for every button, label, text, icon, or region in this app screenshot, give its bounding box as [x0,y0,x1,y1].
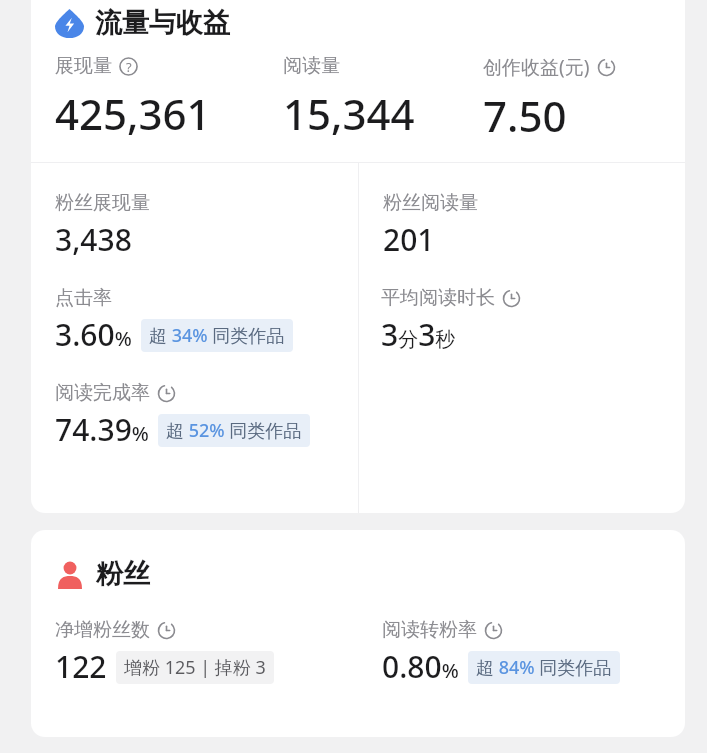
other: 粉丝 [55,559,85,589]
button[interactable]: 展现量 [31,54,259,142]
staticText: 点击率 [55,286,112,310]
staticText: 74.39% [55,409,149,450]
staticText: 7.50 [483,87,567,144]
button[interactable]: 平均阅读时长 [359,286,685,355]
button[interactable]: 阅读完成率 [31,381,358,450]
staticText: 超 34% 同类作品 [149,323,285,348]
staticText: 创作收益(元) [483,54,590,80]
staticText: 3.60% [55,314,132,355]
staticText: 122 [55,646,107,687]
staticText: 425,361 [55,85,211,142]
button[interactable]: 创作收益(元) [459,54,685,144]
staticText: 15,344 [283,85,415,142]
staticText: 阅读量 [283,54,340,78]
staticText: 平均阅读时长 [381,286,495,310]
staticText: 增粉 125 | 掉粉 3 [124,655,266,680]
staticText: 3分3秒 [381,314,456,355]
button[interactable]: 粉丝展现量 [31,191,358,260]
staticText: 粉丝 [96,557,150,591]
other: 流量与收益 [55,9,84,38]
button[interactable]: 粉丝阅读量 [359,191,685,260]
staticText: 0.80% [382,646,459,687]
button[interactable]: 流量与收益 [31,0,685,46]
staticText: 展现量 [55,54,112,78]
staticText: 超 84% 同类作品 [476,655,612,680]
staticText: 流量与收益 [95,6,230,40]
button[interactable]: 点击率 [31,286,358,355]
button[interactable]: 阅读量 [259,54,459,142]
button[interactable]: 粉丝 [31,530,685,618]
staticText: 3,438 [55,219,132,260]
staticText: 粉丝阅读量 [383,191,478,215]
staticText: 阅读转粉率 [382,618,477,642]
button[interactable]: 净增粉丝数 [31,618,358,687]
button[interactable]: 阅读转粉率 [358,618,685,687]
staticText: 粉丝展现量 [55,191,150,215]
staticText: 201 [383,219,435,260]
staticText: ? [126,58,132,76]
staticText: 阅读完成率 [55,381,150,405]
staticText: 超 52% 同类作品 [166,418,302,443]
staticText: 净增粉丝数 [55,618,150,642]
